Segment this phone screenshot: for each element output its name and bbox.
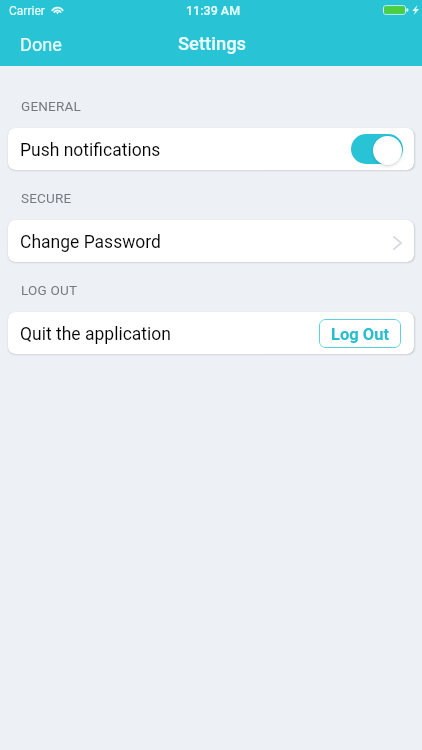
staticText: 11:39 AM <box>186 3 241 18</box>
button[interactable]: Push notifications <box>8 128 414 170</box>
staticText: Settings <box>178 33 247 55</box>
staticText: GENERAL <box>21 98 81 114</box>
staticText: Carrier <box>9 4 45 18</box>
button[interactable]: Log Out <box>319 319 401 348</box>
staticText: Push notifications <box>20 140 161 161</box>
staticText: SECURE <box>21 190 72 206</box>
staticText: Log Out <box>331 325 390 344</box>
button[interactable]: Done <box>0 28 78 61</box>
staticText: Quit the application <box>20 324 171 345</box>
staticText: LOG OUT <box>21 282 78 298</box>
button[interactable]: Change Password <box>8 220 414 262</box>
staticText: Done <box>20 34 62 55</box>
staticText: Change Password <box>20 232 161 253</box>
button[interactable]: Push notifications toggle <box>351 134 403 164</box>
other: Open Change Password <box>393 236 402 250</box>
